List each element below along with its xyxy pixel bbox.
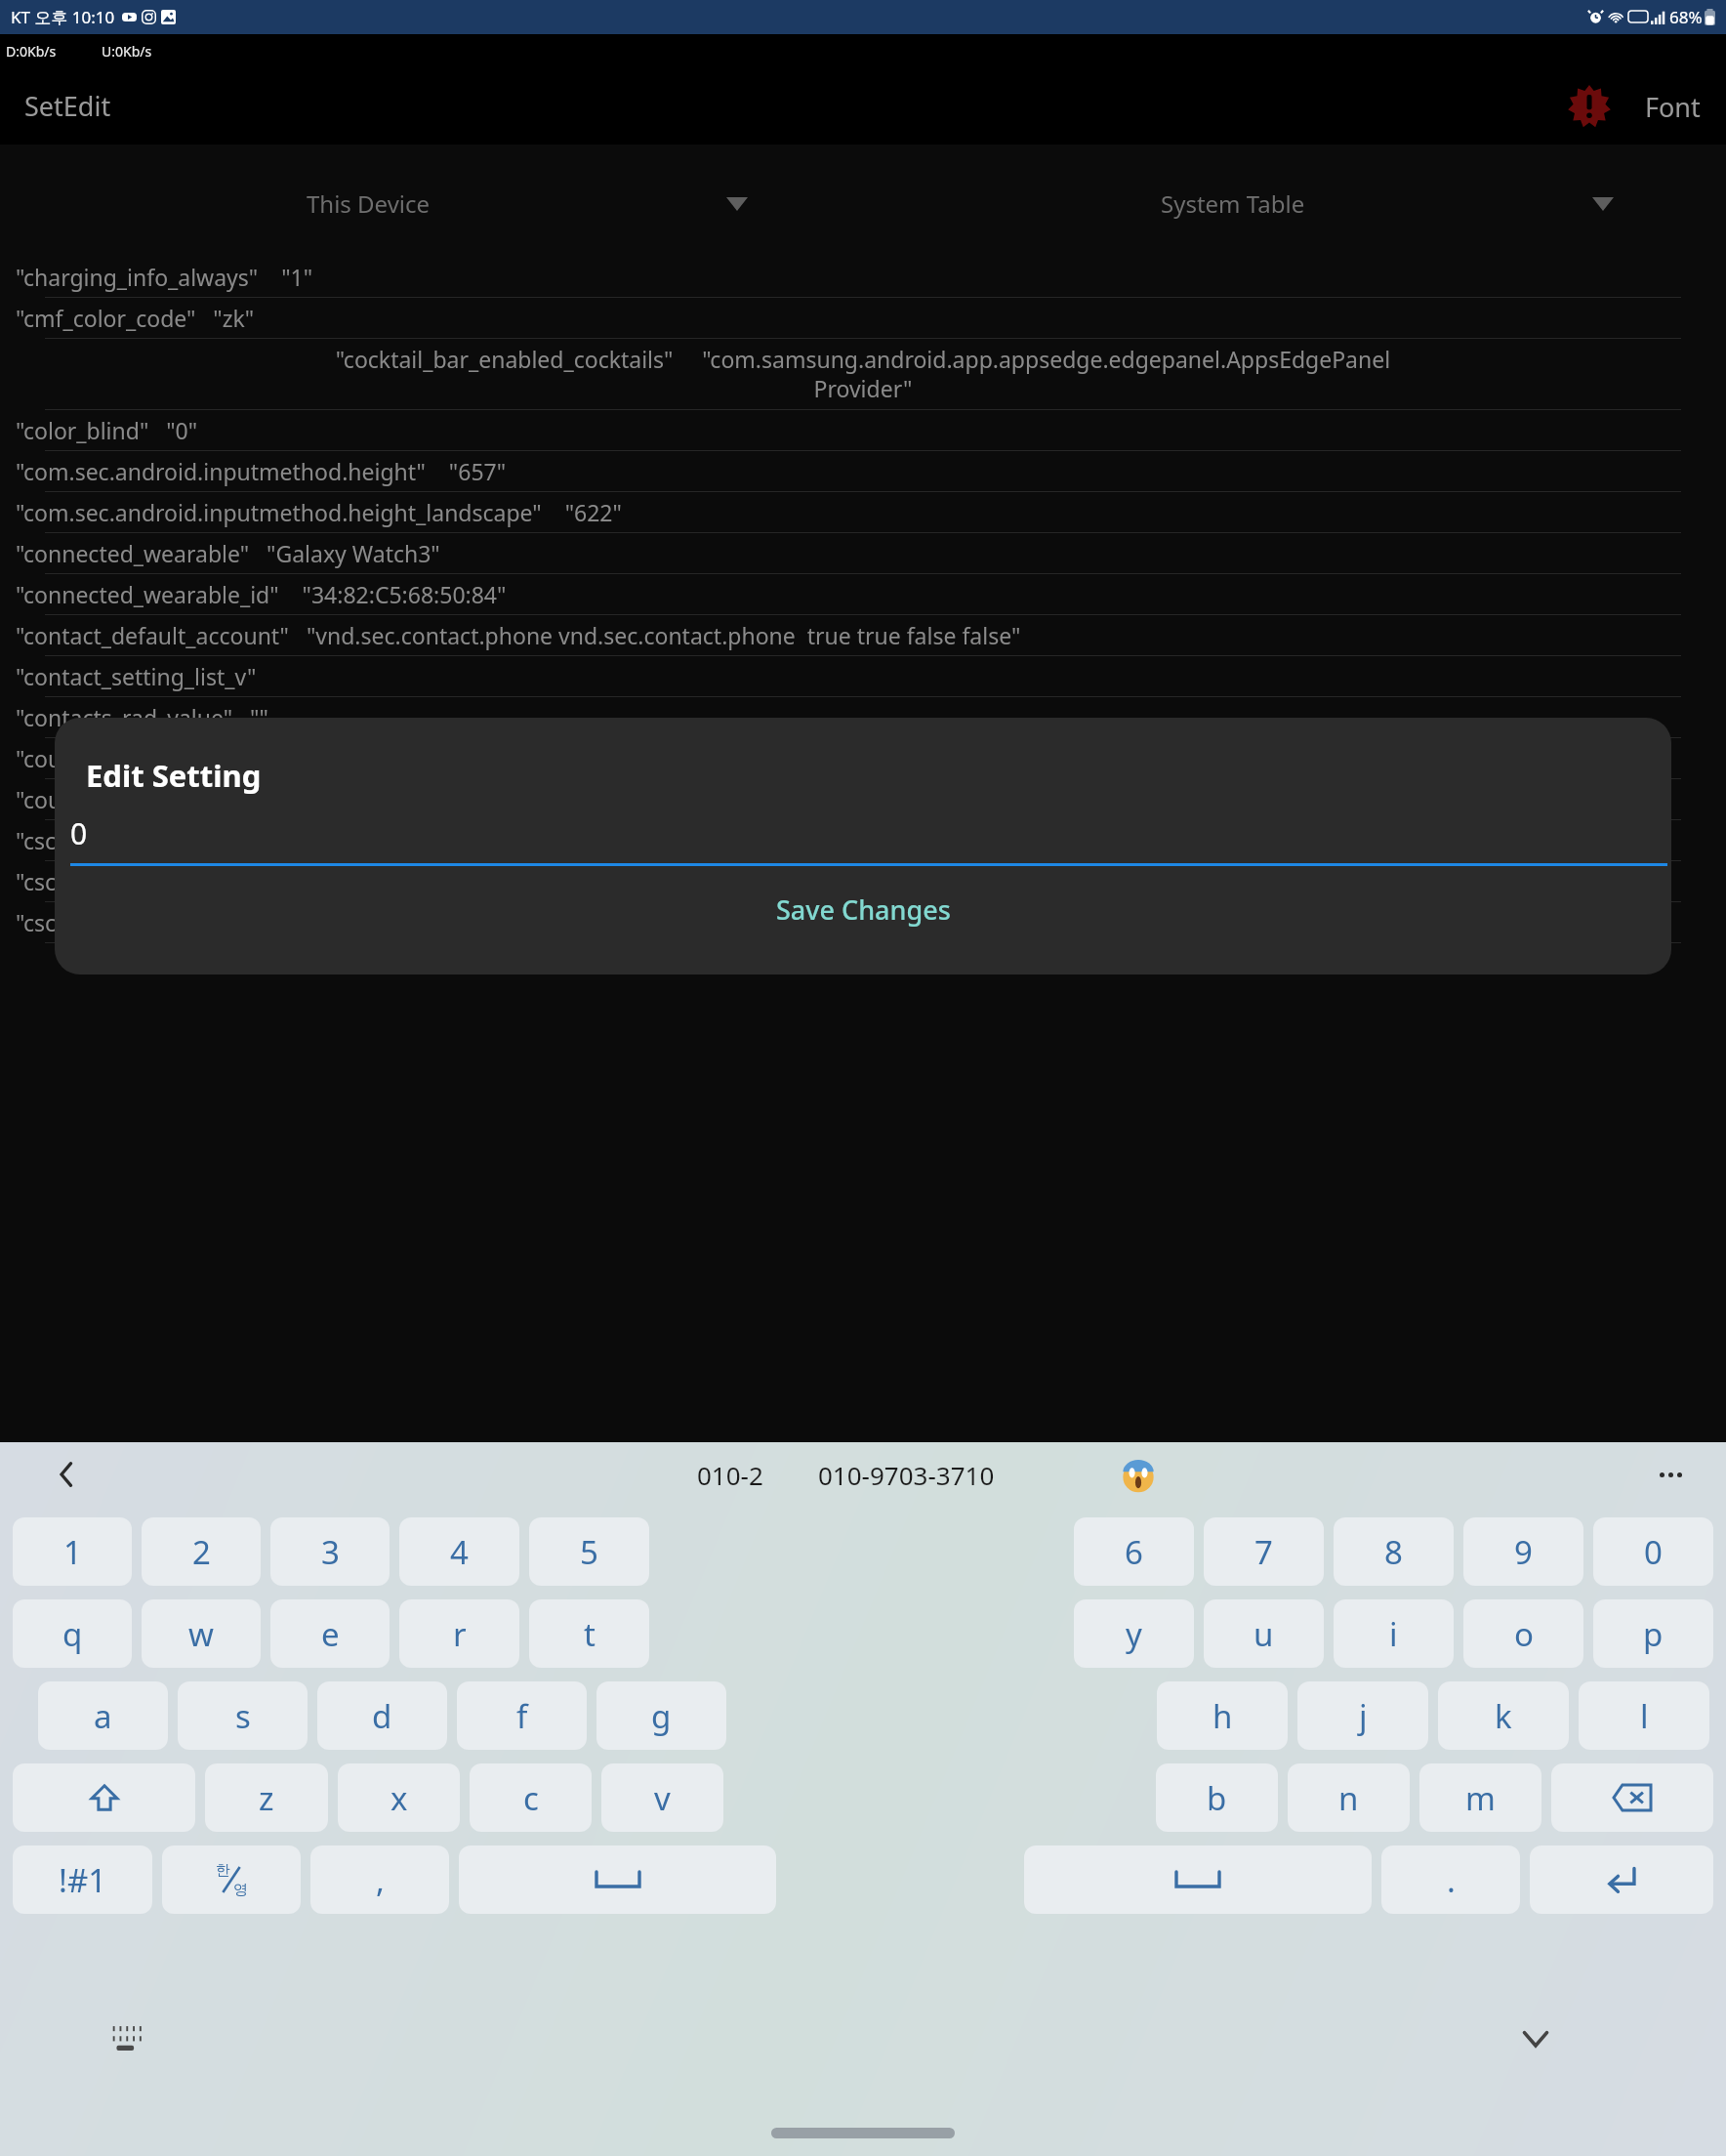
- staticText: "connected_wearable_id" "34:82:C5:68:50:…: [16, 579, 1710, 609]
- button[interactable]: y: [1074, 1599, 1194, 1668]
- button[interactable]: 5: [529, 1517, 649, 1586]
- button[interactable]: 2: [142, 1517, 261, 1586]
- button[interactable]: r: [399, 1599, 519, 1668]
- staticText: 010-9703-3710: [818, 1458, 995, 1492]
- button[interactable]: c: [470, 1763, 592, 1832]
- staticText: "contact_default_account" "vnd.sec.conta…: [16, 620, 1710, 650]
- button[interactable]: s: [178, 1681, 308, 1750]
- button[interactable]: Space: [1024, 1845, 1372, 1914]
- staticText: f: [516, 1694, 528, 1738]
- button[interactable]: "connected_wearable_id" "34:82:C5:68:50:…: [0, 574, 1726, 615]
- staticText: 한: [216, 1861, 230, 1880]
- staticText: .: [1447, 1858, 1456, 1902]
- button[interactable]: 6: [1074, 1517, 1194, 1586]
- button[interactable]: Shift: [13, 1763, 195, 1832]
- button[interactable]: 9: [1463, 1517, 1583, 1586]
- button[interactable]: v: [601, 1763, 723, 1832]
- button[interactable]: w: [142, 1599, 261, 1668]
- button[interactable]: System Table: [863, 187, 1726, 220]
- button[interactable]: l: [1579, 1681, 1709, 1750]
- staticText: "cmf_color_code" "zk": [16, 303, 1710, 333]
- button[interactable]: d: [317, 1681, 447, 1750]
- button[interactable]: o: [1463, 1599, 1583, 1668]
- button[interactable]: "contacts_rad_value" "": [0, 697, 1726, 738]
- staticText: x: [390, 1776, 408, 1820]
- staticText: D:0Kb/s: [6, 42, 57, 61]
- button[interactable]: "com.sec.android.inputmethod.height_land…: [0, 492, 1726, 533]
- button[interactable]: t: [529, 1599, 649, 1668]
- button[interactable]: Save Changes: [55, 866, 1671, 953]
- staticText: m: [1465, 1776, 1496, 1820]
- button[interactable]: "country_cert_info_en": [0, 738, 1726, 779]
- button[interactable]: "contact_default_account" "vnd.sec.conta…: [0, 615, 1726, 656]
- staticText: "contacts_rad_value" "": [16, 702, 1710, 732]
- staticText: 68%: [1669, 6, 1703, 28]
- button[interactable]: g: [596, 1681, 726, 1750]
- staticText: 010-2: [697, 1458, 763, 1492]
- button[interactable]: u: [1204, 1599, 1324, 1668]
- button[interactable]: m: [1419, 1763, 1541, 1832]
- button[interactable]: f: [457, 1681, 587, 1750]
- button[interactable]: "csc_pref_camera_qu": [0, 861, 1726, 902]
- staticText: o: [1514, 1612, 1534, 1656]
- button[interactable]: k: [1438, 1681, 1569, 1750]
- button[interactable]: "cocktail_bar_enabled_cocktails" "com.sa…: [0, 339, 1726, 410]
- staticText: "connected_wearable" "Galaxy Watch3": [16, 538, 1710, 568]
- button[interactable]: 1: [13, 1517, 132, 1586]
- button[interactable]: j: [1297, 1681, 1428, 1750]
- button[interactable]: "cmf_color_code" "zk": [0, 298, 1726, 339]
- button[interactable]: n: [1288, 1763, 1410, 1832]
- staticText: !#1: [59, 1858, 107, 1902]
- button[interactable]: e: [270, 1599, 390, 1668]
- button[interactable]: 8: [1334, 1517, 1454, 1586]
- button[interactable]: "country_code" "011": [0, 779, 1726, 820]
- button[interactable]: Space: [459, 1845, 776, 1914]
- button[interactable]: "charging_info_always" "1": [0, 262, 1726, 298]
- button[interactable]: More options: [1650, 1454, 1691, 1495]
- button[interactable]: 0: [1593, 1517, 1713, 1586]
- staticText: 1: [63, 1530, 82, 1574]
- button[interactable]: p: [1593, 1599, 1713, 1668]
- button[interactable]: Enter: [1530, 1845, 1713, 1914]
- button[interactable]: i: [1334, 1599, 1454, 1668]
- button[interactable]: !#1: [13, 1845, 152, 1914]
- button[interactable]: h: [1157, 1681, 1288, 1750]
- button[interactable]: ,: [310, 1845, 449, 1914]
- button[interactable]: z: [205, 1763, 328, 1832]
- staticText: 4: [450, 1530, 469, 1574]
- button[interactable]: "csc_pref_camera_videoquality_key" "0": [0, 902, 1726, 943]
- button[interactable]: 3: [270, 1517, 390, 1586]
- button[interactable]: Font: [1641, 81, 1705, 133]
- button[interactable]: "color_blind" "0": [0, 410, 1726, 451]
- button[interactable]: Hide keyboard: [1513, 2016, 1558, 2061]
- button[interactable]: q: [13, 1599, 132, 1668]
- button[interactable]: Back: [47, 1454, 88, 1495]
- staticText: y: [1126, 1612, 1142, 1656]
- staticText: "country_cert_info_en": [16, 743, 1710, 773]
- button[interactable]: "contact_setting_list_v": [0, 656, 1726, 697]
- button[interactable]: .: [1381, 1845, 1520, 1914]
- staticText: l: [1640, 1694, 1649, 1738]
- button[interactable]: Keyboard layout: [105, 2016, 150, 2061]
- staticText: 0: [70, 813, 88, 853]
- staticText: k: [1495, 1694, 1512, 1738]
- staticText: t: [584, 1612, 596, 1656]
- button[interactable]: This Device: [0, 187, 863, 220]
- staticText: "csc_pref_camera_fo": [16, 825, 1710, 855]
- button[interactable]: a: [38, 1681, 168, 1750]
- button[interactable]: 7: [1204, 1517, 1324, 1586]
- button[interactable]: b: [1156, 1763, 1278, 1832]
- button[interactable]: 4: [399, 1517, 519, 1586]
- staticText: "color_blind" "0": [16, 415, 1710, 445]
- button[interactable]: x: [338, 1763, 460, 1832]
- button[interactable]: Language: [162, 1845, 301, 1914]
- staticText: j: [1359, 1694, 1368, 1738]
- button[interactable]: Delete: [1551, 1763, 1713, 1832]
- button[interactable]: "connected_wearable" "Galaxy Watch3": [0, 533, 1726, 574]
- staticText: a: [94, 1694, 112, 1738]
- button[interactable]: Warning: [1563, 80, 1616, 133]
- button[interactable]: "csc_pref_camera_fo": [0, 820, 1726, 861]
- button[interactable]: "com.sec.android.inputmethod.height" "65…: [0, 451, 1726, 492]
- staticText: d: [372, 1694, 392, 1738]
- staticText: r: [453, 1612, 467, 1656]
